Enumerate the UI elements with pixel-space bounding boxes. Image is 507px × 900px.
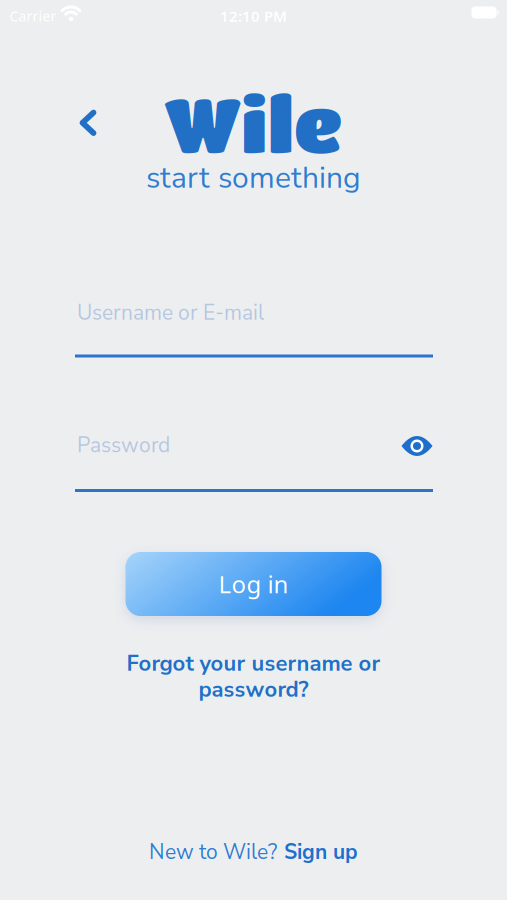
textField[interactable]: Username or E-mail: [75, 295, 433, 357]
staticText: password?: [198, 674, 308, 704]
staticText: Username or E-mail: [77, 298, 264, 327]
staticText: 12:10 PM: [220, 6, 287, 26]
secureTextField[interactable]: Password: [75, 430, 433, 492]
button[interactable]: Forgot your username or: [126, 648, 380, 704]
staticText: start something: [146, 157, 361, 198]
button[interactable]: Back: [70, 100, 105, 145]
staticText: Forgot your username or: [126, 648, 380, 678]
staticText: Log in: [218, 568, 288, 600]
staticText: Wile: [164, 79, 343, 166]
button[interactable]: Sign up: [284, 838, 358, 866]
button[interactable]: Show password: [393, 428, 440, 463]
staticText: Password: [77, 431, 170, 460]
staticText: Carrier: [9, 7, 56, 25]
button[interactable]: Log in: [125, 552, 381, 616]
staticText: New to Wile?: [149, 838, 277, 866]
staticText: Sign up: [284, 838, 358, 866]
